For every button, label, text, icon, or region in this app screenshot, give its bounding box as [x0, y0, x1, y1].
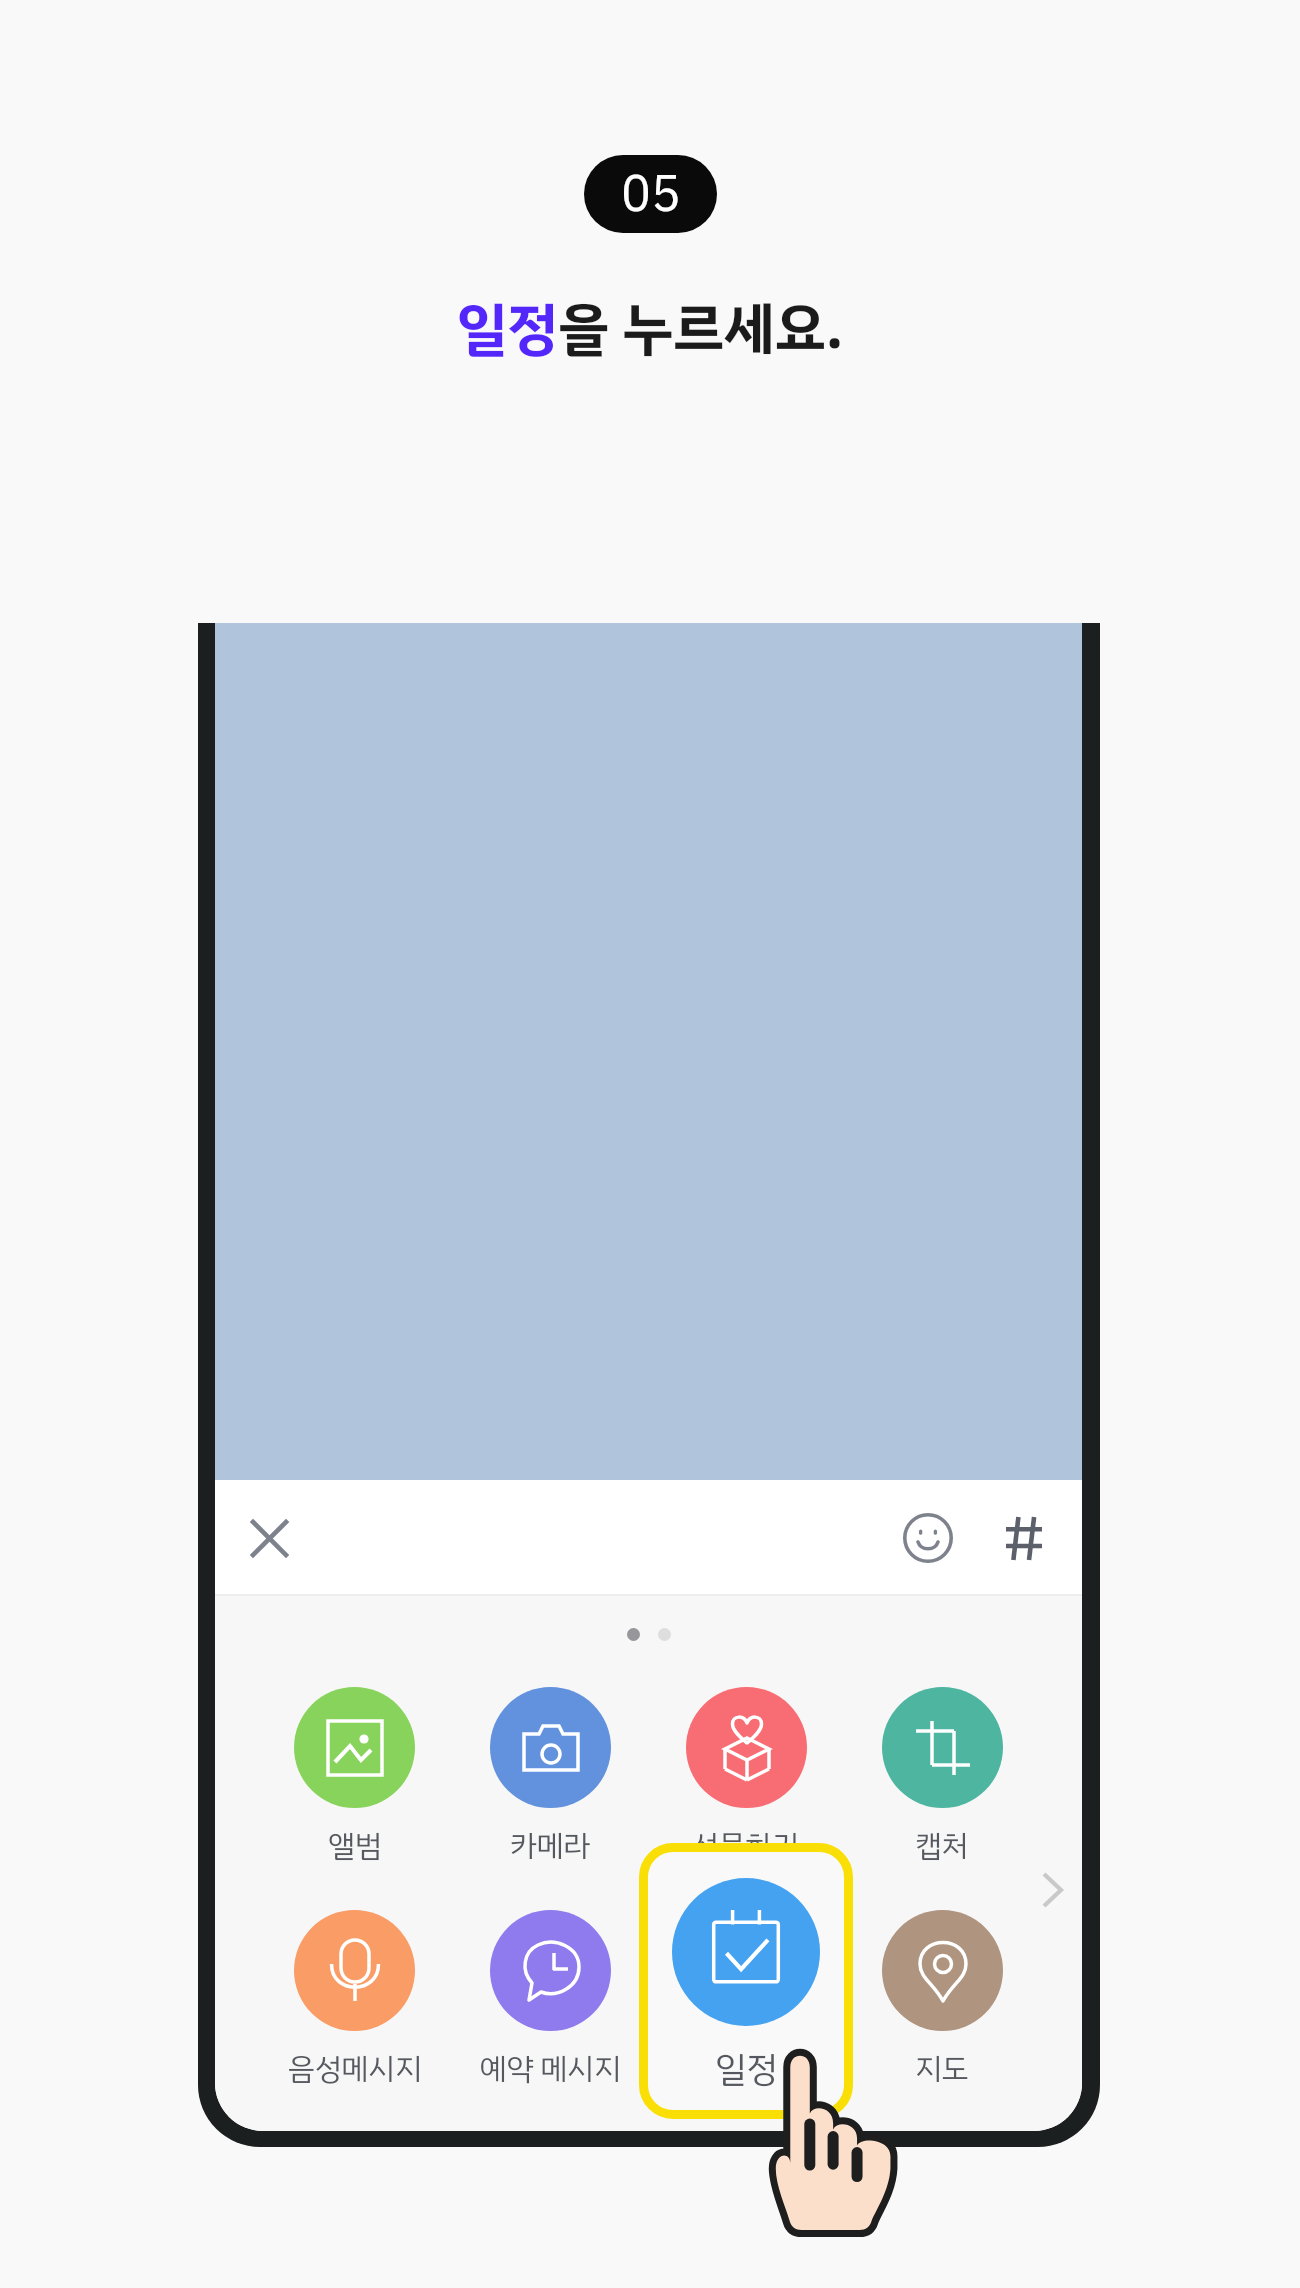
button[interactable]: 캡처 — [844, 1687, 1040, 1868]
button[interactable]: 선물하기 — [648, 1687, 844, 1868]
staticText: 음성메시지 — [288, 2046, 422, 2091]
button[interactable]: Close — [233, 1502, 305, 1574]
button[interactable]: 지도 — [844, 1910, 1040, 2091]
button[interactable]: Emoji — [892, 1502, 964, 1574]
button[interactable] — [672, 1878, 820, 2026]
button[interactable]: 예약 메시지 — [452, 1910, 648, 2091]
staticText: 일정 — [715, 2043, 778, 2096]
button[interactable]: 앨범 — [257, 1687, 452, 1868]
staticText: 카메라 — [510, 1823, 591, 1868]
staticText: 선물하기 — [692, 1823, 800, 1868]
staticText: 예약 메시지 — [480, 2046, 621, 2091]
button[interactable]: Next page — [1030, 1858, 1075, 1922]
staticText: 일정을 누르세요. — [456, 286, 844, 372]
button[interactable] — [648, 1910, 844, 2091]
staticText — [742, 2046, 750, 2091]
staticText: 05 — [621, 157, 681, 232]
button[interactable]: 카메라 — [452, 1687, 648, 1868]
staticText: 지도 — [915, 2046, 969, 2091]
button[interactable]: Hashtag — [988, 1502, 1060, 1574]
staticText: 캡처 — [915, 1823, 969, 1868]
staticText: 앨범 — [328, 1823, 382, 1868]
button[interactable]: 음성메시지 — [257, 1910, 452, 2091]
